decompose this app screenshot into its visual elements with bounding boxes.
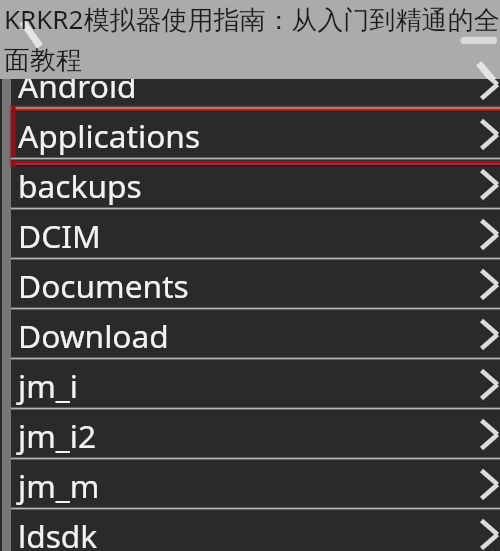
staticText: KRKR2模拟器使用指南：从入门到精通的全面教程 bbox=[4, 1, 500, 77]
staticText: jm_m bbox=[18, 464, 100, 507]
other: Open Documents bbox=[480, 269, 499, 300]
other: Open jm_m bbox=[480, 469, 499, 500]
staticText: Applications bbox=[18, 114, 201, 157]
button[interactable]: Download bbox=[11, 307, 500, 357]
staticText: Download bbox=[18, 314, 169, 357]
other: Open Applications bbox=[480, 119, 499, 150]
button[interactable]: Documents bbox=[11, 257, 500, 307]
other: Open backups bbox=[480, 169, 499, 200]
other: Open jm_i2 bbox=[480, 419, 499, 450]
staticText: Documents bbox=[18, 264, 189, 307]
other: Open Download bbox=[480, 319, 499, 350]
button[interactable]: jm_i bbox=[11, 357, 500, 407]
staticText: jm_i2 bbox=[18, 414, 97, 457]
button[interactable]: jm_m bbox=[11, 457, 500, 507]
staticText: Android bbox=[18, 64, 137, 107]
staticText: backups bbox=[18, 164, 142, 207]
button[interactable]: backups bbox=[11, 157, 500, 207]
button[interactable]: Android bbox=[11, 57, 500, 107]
other: Open jm_i bbox=[480, 369, 499, 400]
staticText: jm_i bbox=[18, 364, 79, 407]
staticText: DCIM bbox=[18, 214, 101, 257]
staticText: ldsdk bbox=[18, 514, 98, 551]
button[interactable]: ldsdk bbox=[11, 507, 500, 551]
button[interactable]: jm_i2 bbox=[11, 407, 500, 457]
other: Open ldsdk bbox=[480, 519, 499, 550]
other: Open DCIM bbox=[480, 219, 499, 250]
button[interactable]: Applications bbox=[11, 107, 500, 157]
button[interactable]: DCIM bbox=[11, 207, 500, 257]
other: Open Android bbox=[480, 69, 499, 100]
